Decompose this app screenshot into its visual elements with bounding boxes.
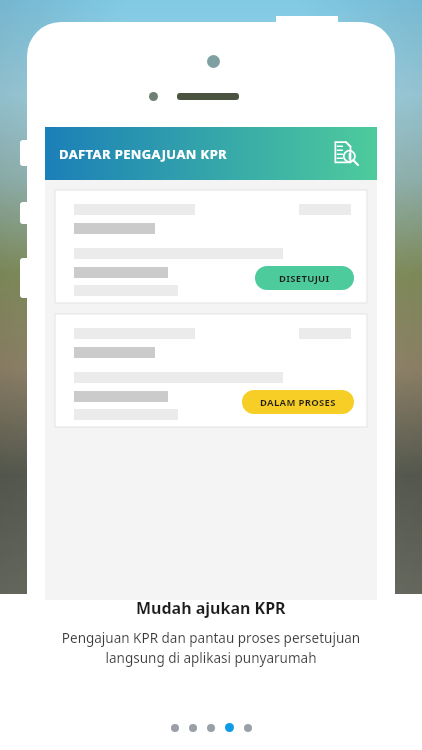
staticText: DISETUJUI <box>279 272 330 285</box>
button[interactable]: Search documents <box>329 137 363 171</box>
button[interactable]: DALAM PROSES <box>55 314 367 427</box>
button[interactable]: DALAM PROSES <box>242 390 354 414</box>
button[interactable] <box>171 724 179 732</box>
button[interactable] <box>189 724 197 732</box>
staticText: Mudah ajukan KPR <box>136 597 286 619</box>
button[interactable] <box>244 724 252 732</box>
button[interactable] <box>225 723 234 732</box>
staticText: Pengajuan KPR dan pantau proses persetuj… <box>28 629 394 667</box>
button[interactable]: DISETUJUI <box>255 266 354 290</box>
staticText: DAFTAR PENGAJUAN KPR <box>59 145 228 163</box>
button[interactable]: DISETUJUI <box>55 190 367 303</box>
staticText: DALAM PROSES <box>260 396 336 409</box>
button[interactable]: DAFTAR PENGAJUAN KPR <box>45 127 377 180</box>
button[interactable] <box>207 724 215 732</box>
